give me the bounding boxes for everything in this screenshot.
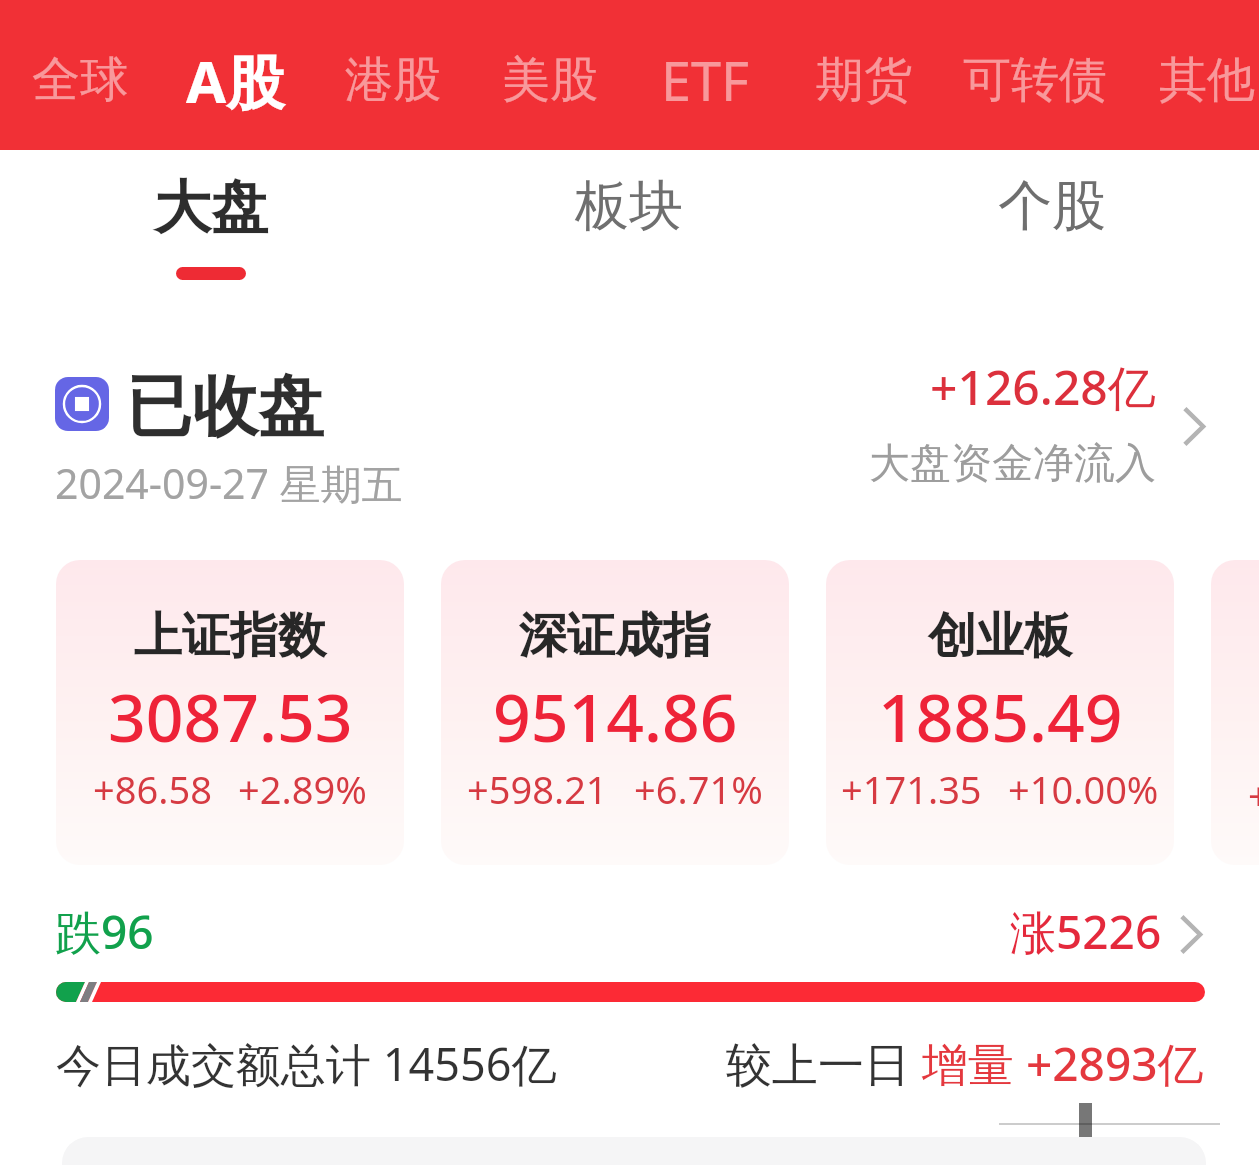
staticText: 美股: [502, 50, 598, 110]
staticText: 1885.49: [878, 671, 1123, 761]
staticText: +126.28亿: [930, 354, 1156, 420]
button[interactable]: 美股: [502, 5, 598, 155]
staticText: +2.89%: [238, 763, 367, 815]
staticText: +2893亿: [1026, 1032, 1204, 1095]
staticText: 涨5226: [1010, 900, 1162, 963]
staticText: 较上一日: [726, 1032, 922, 1095]
button[interactable]: 期货: [816, 5, 912, 155]
staticText: 2024-09-27 星期五: [55, 455, 403, 511]
button[interactable]: 创业板: [826, 560, 1174, 865]
staticText: 港股: [345, 50, 441, 110]
staticText: 深证成指: [519, 606, 711, 666]
button[interactable]: Capital flow details: [1172, 400, 1216, 452]
button[interactable]: 个股: [998, 172, 1106, 240]
button[interactable]: 板块: [575, 172, 683, 240]
button[interactable]: 港股: [345, 5, 441, 155]
staticText: 增量: [922, 1032, 1026, 1095]
button[interactable]: 上证指数: [56, 560, 404, 865]
button[interactable]: 深证成指: [441, 560, 789, 865]
staticText: 已收盘: [126, 365, 324, 448]
staticText: +6.71%: [634, 763, 763, 815]
staticText: +171.35: [841, 763, 982, 815]
staticText: 大盘: [154, 172, 268, 244]
staticText: 今日成交额总计 14556亿: [56, 1033, 557, 1094]
button[interactable]: ETF: [661, 5, 750, 155]
staticText: +52.14: [1248, 769, 1259, 821]
staticText: 大盘资金净流入: [869, 438, 1156, 490]
staticText: ETF: [661, 43, 750, 117]
button[interactable]: 可转债: [963, 5, 1107, 155]
staticText: +598.21: [467, 763, 608, 815]
staticText: A股: [186, 41, 285, 120]
staticText: 9514.86: [493, 671, 738, 761]
staticText: 其他: [1159, 50, 1255, 110]
staticText: 全球: [32, 50, 128, 110]
button[interactable]: 科创50: [1211, 560, 1259, 865]
button[interactable]: Market closed: [55, 377, 109, 431]
staticText: +10.00%: [1008, 763, 1159, 815]
staticText: 板块: [575, 172, 683, 240]
staticText: 上证指数: [134, 606, 326, 666]
staticText: 创业板: [928, 606, 1072, 666]
button[interactable]: 其他: [1159, 5, 1255, 155]
button[interactable]: 全球: [32, 5, 128, 155]
staticText: 个股: [998, 172, 1106, 240]
button[interactable]: A股: [186, 5, 285, 155]
button[interactable]: 大盘: [154, 172, 268, 280]
staticText: 可转债: [963, 50, 1107, 110]
button[interactable]: Advancing declining details: [1168, 906, 1214, 962]
staticText: 3087.53: [108, 671, 353, 761]
staticText: 跌96: [55, 900, 154, 963]
staticText: +86.58: [93, 763, 212, 815]
staticText: 期货: [816, 50, 912, 110]
